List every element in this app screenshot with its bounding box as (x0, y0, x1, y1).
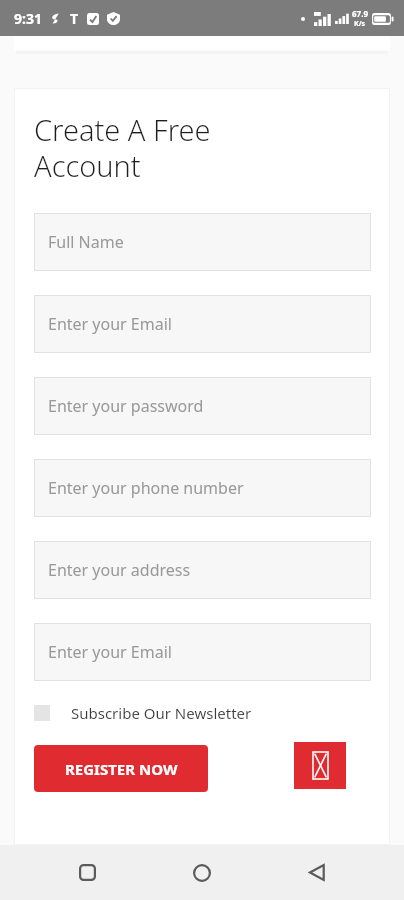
staticText: Enter your Email (48, 641, 172, 663)
button[interactable]: REGISTER NOW (34, 745, 208, 792)
staticText: REGISTER NOW (65, 759, 178, 779)
button[interactable]: Home (174, 845, 230, 900)
button[interactable]: Subscribe Our Newsletter (34, 701, 252, 725)
button[interactable]: Back (289, 845, 345, 900)
staticText: Enter your phone number (48, 477, 244, 499)
staticText: 67.9 (352, 8, 368, 19)
staticText: Create A Free Account (34, 110, 211, 186)
button[interactable]: Enter your address (34, 541, 371, 599)
staticText: Subscribe Our Newsletter (71, 703, 252, 723)
staticText: Full Name (48, 231, 124, 253)
button[interactable]: Recent apps (59, 845, 115, 900)
staticText: Enter your password (48, 395, 204, 417)
staticText: Enter your Email (48, 313, 172, 335)
button[interactable]: Chat support (294, 742, 346, 789)
staticText: K/s (354, 19, 366, 29)
button[interactable]: Enter your Email (34, 295, 371, 353)
staticText: 9:31 (14, 9, 42, 28)
staticText: Enter your address (48, 559, 191, 581)
button[interactable]: Full Name (34, 213, 371, 271)
button[interactable]: Enter your Email (34, 623, 371, 681)
button[interactable]: Enter your password (34, 377, 371, 435)
staticText: T (70, 9, 79, 28)
button[interactable]: Enter your phone number (34, 459, 371, 517)
